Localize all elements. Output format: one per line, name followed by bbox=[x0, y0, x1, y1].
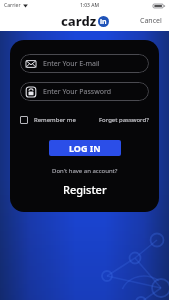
staticText: Enter Your E-mail bbox=[43, 59, 100, 69]
staticText: Forget password? bbox=[99, 116, 149, 124]
button[interactable]: cardz bbox=[61, 12, 109, 30]
button[interactable]: Enter Your Password bbox=[20, 82, 149, 101]
staticText: Remember me bbox=[34, 116, 76, 124]
staticText: cardz bbox=[61, 12, 97, 30]
staticText: 1:03 AM bbox=[80, 2, 100, 9]
staticText: Register bbox=[63, 182, 107, 197]
staticText: in bbox=[100, 17, 107, 27]
staticText: Enter Your Password bbox=[43, 87, 111, 97]
staticText: Cancel bbox=[140, 16, 162, 26]
staticText: LOG IN bbox=[69, 142, 101, 154]
button[interactable]: Enter Your E-mail bbox=[20, 54, 149, 73]
staticText: Don't have an account? bbox=[52, 167, 118, 175]
button[interactable]: Forget password? bbox=[99, 114, 149, 126]
button[interactable]: LOG IN bbox=[49, 140, 121, 156]
button[interactable]: Remember me bbox=[20, 114, 76, 126]
button[interactable]: Register bbox=[57, 181, 113, 198]
staticText: Carrier bbox=[4, 2, 21, 9]
button[interactable]: Cancel bbox=[133, 13, 169, 29]
